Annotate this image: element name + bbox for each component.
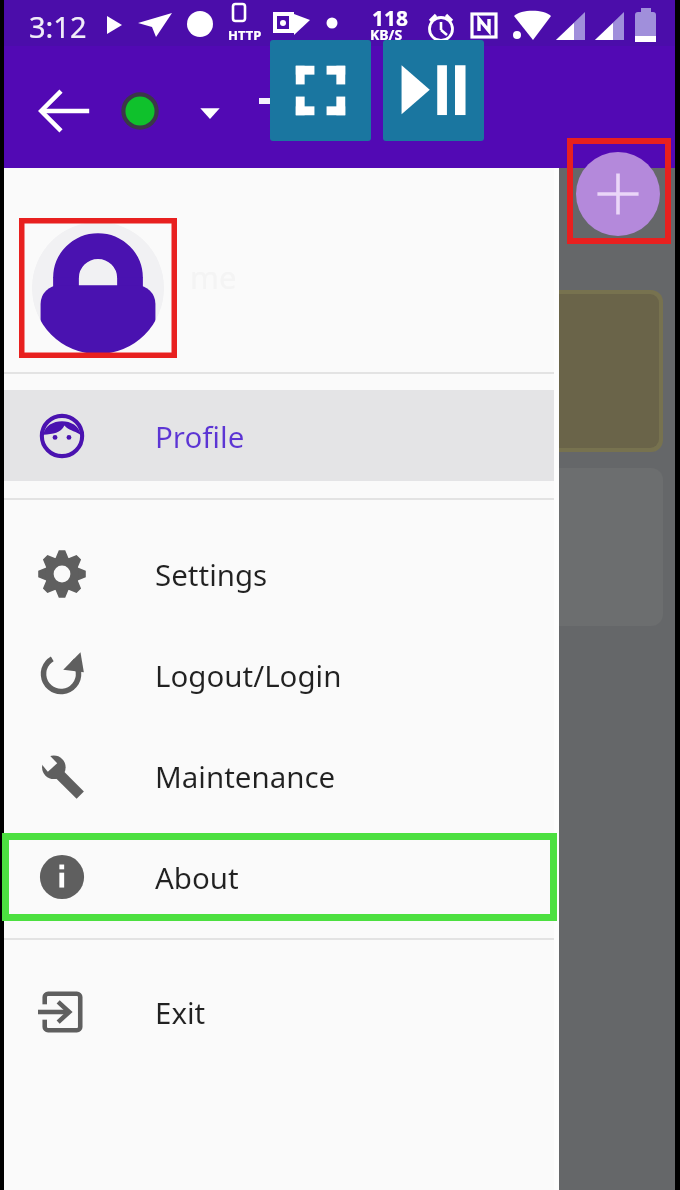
button[interactable]: About xyxy=(4,826,559,927)
staticText: HTTP xyxy=(228,26,262,44)
button[interactable]: Exit xyxy=(4,961,559,1062)
button[interactable]: Dropdown xyxy=(188,96,232,128)
button[interactable]: Play or pause xyxy=(383,40,484,141)
button[interactable]: Profile xyxy=(4,390,559,481)
staticText: Logout/Login xyxy=(155,655,342,695)
staticText: Profile xyxy=(155,416,245,456)
button[interactable]: Add xyxy=(576,152,660,236)
button[interactable]: Logout/Login xyxy=(4,624,559,725)
button[interactable]: Maintenance xyxy=(4,725,559,826)
button[interactable]: Fullscreen xyxy=(270,40,371,141)
staticText: 118 xyxy=(372,4,409,33)
staticText: 3:12 xyxy=(29,7,87,46)
staticText: Some interesting info' xyxy=(30,506,271,574)
staticText: Exit xyxy=(155,992,206,1032)
button[interactable]: Back xyxy=(34,81,94,141)
staticText: About xyxy=(155,857,239,897)
staticText: Maintenance xyxy=(155,756,336,796)
button[interactable]: Settings xyxy=(4,523,559,624)
button[interactable]: Status indicator xyxy=(114,85,166,137)
staticText: Settings xyxy=(155,554,268,594)
staticText: KB/S xyxy=(370,25,403,44)
